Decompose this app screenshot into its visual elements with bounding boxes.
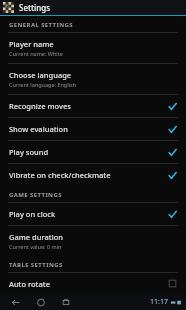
other: App icon <box>3 2 14 13</box>
button[interactable]: Back <box>8 294 24 310</box>
staticText: Settings <box>19 2 51 13</box>
button[interactable]: Player name <box>0 33 186 63</box>
staticText: Game duration <box>9 232 63 242</box>
staticText: 11:17 <box>150 297 168 307</box>
button[interactable]: Vibrate on check/checkmate <box>0 164 186 186</box>
staticText: Auto rotate <box>9 279 50 288</box>
button[interactable]: Home <box>33 294 49 310</box>
staticText: Choose language <box>9 70 72 80</box>
button[interactable]: App icon <box>0 0 186 15</box>
staticText: Play sound <box>9 147 49 157</box>
button[interactable]: Choose language <box>0 64 186 94</box>
button[interactable]: Show evaluation <box>0 118 186 140</box>
button[interactable]: Play on clock <box>0 203 186 225</box>
staticText: Recognize moves <box>9 101 71 111</box>
staticText: Player name <box>9 39 54 49</box>
other: Status icons <box>171 299 182 306</box>
staticText: Current value: 0 min <box>9 243 62 250</box>
staticText: GENERAL SETTINGS <box>9 21 73 29</box>
staticText: Show evaluation <box>9 124 68 134</box>
button[interactable]: Game duration <box>0 226 186 256</box>
staticText: Play on clock <box>9 209 56 219</box>
staticText: Current language: English <box>9 81 77 88</box>
staticText: TABLE SETTINGS <box>9 261 63 269</box>
button[interactable]: Recognize moves <box>0 95 186 117</box>
staticText: Current name: White <box>9 50 63 57</box>
button[interactable]: Play sound <box>0 141 186 163</box>
staticText: Vibrate on check/checkmate <box>9 170 111 180</box>
staticText: GAME SETTINGS <box>9 191 62 199</box>
button[interactable]: Recent apps <box>58 294 74 310</box>
button[interactable]: Auto rotate <box>0 273 186 294</box>
